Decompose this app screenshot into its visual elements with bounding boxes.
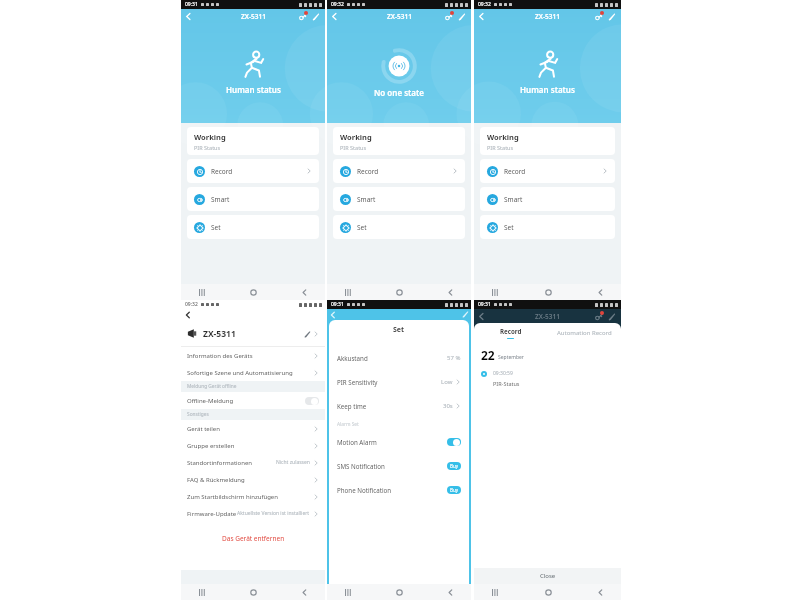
staticText: Aktuellste Version ist installiert	[237, 510, 310, 517]
button[interactable]: Recents	[341, 585, 355, 599]
button[interactable]: Set	[333, 215, 465, 239]
button[interactable]: Set	[187, 215, 319, 239]
button[interactable]: Phone Notification	[329, 478, 469, 502]
button[interactable]: Record	[333, 159, 465, 183]
staticText: Set	[504, 223, 514, 232]
button[interactable]: Gruppe erstellen	[181, 437, 325, 454]
button[interactable]: Home	[541, 585, 555, 599]
staticText: PIR Status	[194, 144, 221, 151]
button[interactable]: Notifications	[592, 10, 605, 23]
staticText: Working	[487, 132, 519, 142]
staticText: Human status	[226, 84, 281, 95]
button[interactable]: Back	[443, 585, 457, 599]
button[interactable]: Recents	[341, 285, 355, 299]
staticText: Record	[504, 167, 526, 176]
button[interactable]: Back	[593, 285, 607, 299]
button[interactable]: Motion Alarm	[329, 430, 469, 454]
staticText: Buy	[450, 463, 459, 469]
staticText: No one state	[374, 87, 424, 98]
button[interactable]: Edit	[455, 10, 468, 23]
staticText: Record	[500, 327, 522, 335]
button[interactable]: Edit device	[301, 328, 313, 340]
staticText: PIR Status	[487, 144, 514, 151]
button[interactable]: Back	[181, 9, 195, 23]
staticText: ZX-5311	[535, 312, 560, 321]
button[interactable]: Sofortige Szene und Automatisierung	[181, 364, 325, 381]
button[interactable]: Back	[443, 285, 457, 299]
button[interactable]: Recents	[488, 585, 502, 599]
button[interactable]: Gerät teilen	[181, 420, 325, 437]
button[interactable]: Notifications	[442, 10, 455, 23]
staticText: Zum Startbildschirm hinzufügen	[187, 493, 278, 501]
staticText: Sofortige Szene und Automatisierung	[187, 369, 293, 377]
button[interactable]: Recents	[195, 285, 209, 299]
button[interactable]: Smart	[480, 187, 615, 211]
button[interactable]: Buy	[447, 486, 461, 494]
button[interactable]: Home	[392, 285, 406, 299]
button[interactable]: Keep time	[329, 394, 469, 418]
staticText: Buy	[450, 487, 459, 493]
staticText: Akkustand	[337, 354, 368, 362]
staticText: Working	[340, 132, 372, 142]
button[interactable]: Back	[181, 309, 194, 321]
staticText: 09:32	[478, 1, 491, 8]
button[interactable]: Home	[246, 285, 260, 299]
button[interactable]: Information des Geräts	[181, 347, 325, 364]
button[interactable]: Notifications	[296, 10, 309, 23]
staticText: Alarm Set	[337, 421, 359, 428]
button[interactable]: Back	[327, 309, 339, 320]
button[interactable]: Edit	[605, 310, 618, 323]
button[interactable]: Edit	[459, 309, 471, 320]
button[interactable]: Working	[187, 127, 319, 155]
button[interactable]: Standortinformationen	[181, 454, 325, 471]
button[interactable]: Back	[297, 585, 311, 599]
button[interactable]: Buy	[447, 462, 461, 470]
staticText: Firmware-Update	[187, 510, 237, 518]
button[interactable]: Close	[474, 568, 621, 584]
button[interactable]: Record	[187, 159, 319, 183]
button[interactable]: Recents	[195, 585, 209, 599]
button[interactable]: SMS Notification	[329, 454, 469, 478]
button[interactable]: Back	[297, 285, 311, 299]
staticText: 57 %	[447, 354, 461, 362]
staticText: Record	[357, 167, 379, 176]
button[interactable]: Akkustand	[329, 346, 469, 370]
staticText: Working	[194, 132, 226, 142]
button[interactable]: Working	[480, 127, 615, 155]
button[interactable]: Notifications	[592, 310, 605, 323]
button[interactable]: Back	[474, 9, 488, 23]
button[interactable]: Edit	[309, 10, 322, 23]
staticText: FAQ & Rückmeldung	[187, 476, 245, 484]
staticText: Keep time	[337, 402, 367, 410]
button[interactable]: Record	[474, 323, 547, 343]
button[interactable]: Firmware-Update	[181, 505, 325, 522]
button[interactable]: Working	[333, 127, 465, 155]
button[interactable]: Back	[593, 585, 607, 599]
button[interactable]: Home	[246, 585, 260, 599]
button[interactable]: Home	[392, 585, 406, 599]
button[interactable]: Smart	[187, 187, 319, 211]
button[interactable]: Recents	[488, 285, 502, 299]
staticText: 09:32	[185, 301, 198, 308]
staticText: Smart	[357, 195, 376, 204]
button[interactable]: FAQ & Rückmeldung	[181, 471, 325, 488]
button[interactable]: Record	[480, 159, 615, 183]
button[interactable]: Home	[541, 285, 555, 299]
button[interactable]: Automation Record	[547, 323, 621, 343]
button[interactable]: Offline-Meldung	[181, 392, 325, 409]
staticText: Record	[211, 167, 233, 176]
button[interactable]: PIR Sensitivity	[329, 370, 469, 394]
button[interactable]: Back	[327, 9, 341, 23]
button[interactable]: Das Gerät entfernen	[181, 530, 325, 546]
button[interactable]: Motion Alarm toggle	[447, 438, 461, 446]
button[interactable]: Zum Startbildschirm hinzufügen	[181, 488, 325, 505]
button[interactable]: ZX-5311	[181, 321, 325, 346]
staticText: Phone Notification	[337, 486, 392, 494]
staticText: ZX-5311	[387, 12, 412, 21]
staticText: SMS Notification	[337, 462, 385, 470]
button[interactable]: Smart	[333, 187, 465, 211]
button[interactable]: Set	[480, 215, 615, 239]
button[interactable]: Back	[474, 309, 488, 323]
button[interactable]: 09:30:59	[474, 370, 621, 387]
button[interactable]: Edit	[605, 10, 618, 23]
